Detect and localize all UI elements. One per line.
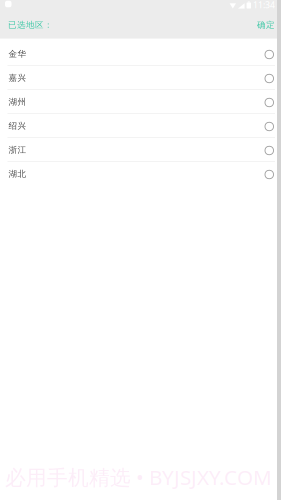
staticText: 湖州: [8, 97, 26, 107]
staticText: 已选地区：: [8, 20, 53, 30]
staticText: 嘉兴: [8, 73, 26, 83]
staticText: 湖北: [8, 169, 26, 179]
staticText: 11:34: [253, 0, 275, 11]
staticText: 必用手机精选 • BYJSJXY.COM: [5, 463, 272, 491]
staticText: 绍兴: [8, 121, 26, 131]
button[interactable]: 浙江: [0, 138, 277, 162]
button[interactable]: 金华: [0, 42, 277, 66]
button[interactable]: 湖北: [0, 162, 277, 186]
button[interactable]: 绍兴: [0, 114, 277, 138]
button[interactable]: 湖州: [0, 90, 277, 114]
staticText: 浙江: [8, 145, 26, 155]
button[interactable]: 确定: [243, 10, 277, 33]
staticText: 金华: [8, 49, 26, 59]
staticText: 确定: [257, 20, 275, 30]
button[interactable]: 嘉兴: [0, 66, 277, 90]
